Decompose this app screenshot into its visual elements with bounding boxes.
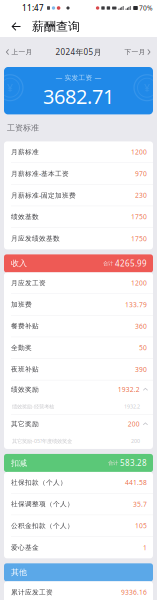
staticText: 200: [131, 437, 140, 444]
staticText: 50: [139, 343, 147, 352]
button[interactable]: 夜班补贴: [4, 359, 153, 380]
button[interactable]: 全勤奖: [4, 337, 153, 358]
button[interactable]: 加班费: [4, 294, 153, 315]
staticText: 583.28: [120, 458, 147, 468]
button[interactable]: 月应发工资: [4, 272, 153, 293]
staticText: 390: [135, 365, 147, 374]
staticText: 社保调整项（个人）: [11, 500, 74, 508]
button[interactable]: 其它奖励: [4, 415, 153, 449]
button[interactable]: 社保调整项（个人）: [4, 494, 153, 515]
staticText: 970: [135, 169, 147, 178]
staticText: 工资标准: [7, 123, 39, 133]
staticText: 3682.71: [43, 83, 114, 109]
staticText: 绩效奖励-经营考核: [12, 403, 54, 410]
staticText: 9336.16: [121, 588, 147, 597]
button[interactable]: 绩效奖励: [4, 380, 153, 414]
button[interactable]: 下一月: [119, 42, 156, 62]
staticText: ¥: [144, 81, 150, 95]
button[interactable]: 上一月: [1, 42, 38, 62]
staticText: ¥: [7, 81, 13, 95]
staticText: 1932.2: [124, 403, 140, 410]
button[interactable]: 爱心基金: [4, 537, 153, 558]
staticText: 1200: [131, 147, 147, 156]
button[interactable]: 月薪标准-基本工资: [4, 163, 153, 184]
staticText: 4265.99: [115, 258, 147, 269]
staticText: 其它奖励: [11, 420, 39, 428]
button[interactable]: 月薪标准: [4, 141, 153, 162]
button[interactable]: 餐费补贴: [4, 316, 153, 337]
staticText: 1: [143, 543, 147, 552]
staticText: 全勤奖: [11, 344, 32, 352]
staticText: 230: [135, 191, 147, 200]
staticText: 月应发工资: [11, 279, 46, 287]
staticText: 下一月: [124, 48, 145, 56]
button[interactable]: 社保扣款（个人）: [4, 472, 153, 493]
staticText: 月薪标准: [11, 148, 39, 156]
staticText: — 实发工资 —: [55, 73, 101, 82]
staticText: 月应发绩效基数: [11, 234, 60, 243]
staticText: 其他: [11, 567, 27, 577]
staticText: 上一月: [12, 48, 33, 56]
staticText: 200: [128, 419, 140, 428]
button[interactable]: 公积金扣款（个人）: [4, 515, 153, 536]
staticText: 社保扣款（个人）: [11, 478, 67, 487]
staticText: 1750: [131, 212, 147, 221]
staticText: 公积金扣款（个人）: [11, 522, 74, 530]
staticText: 其它奖励-05?年度绩效奖金: [12, 437, 72, 444]
staticText: 1932.2: [118, 385, 140, 394]
staticText: 2024年05月: [55, 47, 101, 57]
staticText: 绩效基数: [11, 213, 39, 221]
staticText: 加班费: [11, 300, 32, 309]
button[interactable]: 月应发绩效基数: [4, 228, 153, 249]
staticText: 1200: [131, 278, 147, 287]
button[interactable]: 累计应发工资: [4, 581, 153, 600]
button[interactable]: 绩效基数: [4, 206, 153, 227]
staticText: 扣减: [11, 458, 27, 468]
button[interactable]: 返回: [7, 16, 26, 37]
staticText: 441.58: [125, 478, 147, 487]
staticText: 105: [135, 521, 147, 530]
staticText: 11:47: [22, 3, 44, 13]
staticText: 133.79: [125, 300, 147, 309]
staticText: 餐费补贴: [11, 322, 39, 330]
staticText: 合计: [108, 460, 118, 466]
staticText: 薪酬查询: [32, 19, 80, 34]
staticText: 1750: [131, 234, 147, 243]
staticText: 月薪标准-基本工资: [11, 169, 69, 178]
staticText: 收入: [11, 258, 27, 268]
staticText: 爱心基金: [11, 543, 39, 552]
staticText: 70%: [139, 4, 153, 12]
staticText: 35.7: [133, 500, 147, 509]
staticText: 累计应发工资: [11, 588, 53, 596]
staticText: 夜班补贴: [11, 365, 39, 373]
button[interactable]: 月薪标准-固定加班费: [4, 185, 153, 206]
staticText: 月薪标准-固定加班费: [11, 191, 76, 200]
staticText: 绩效奖励: [11, 385, 39, 393]
staticText: 合计: [103, 260, 113, 267]
staticText: 360: [135, 322, 147, 331]
